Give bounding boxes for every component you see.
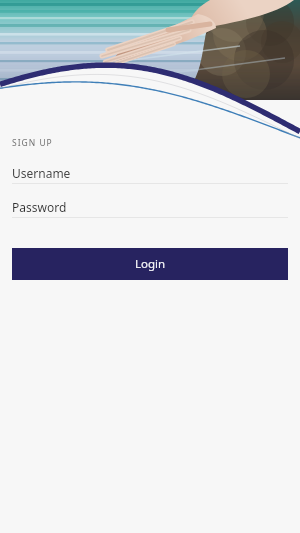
staticText: Login [135,256,166,272]
button[interactable]: Login [12,248,288,280]
staticText: Username [12,165,71,181]
staticText: SIGN UP [12,137,53,149]
staticText: Password [12,199,67,215]
button[interactable]: Username [0,163,300,184]
button[interactable]: Password [0,197,300,218]
